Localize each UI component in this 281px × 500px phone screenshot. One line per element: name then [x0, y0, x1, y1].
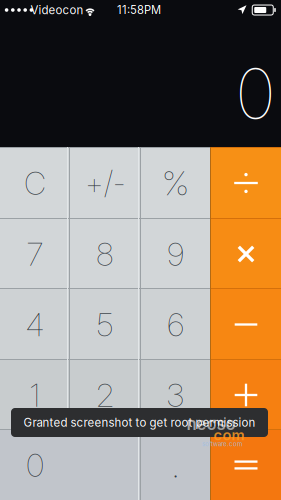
staticText: C: [24, 164, 46, 202]
button[interactable]: Equals: [211, 430, 281, 500]
staticText: 5: [96, 305, 113, 344]
button[interactable]: C: [0, 147, 70, 219]
button[interactable]: 8: [70, 219, 140, 289]
button[interactable]: 9: [140, 219, 211, 289]
button[interactable]: Multiply: [211, 219, 281, 289]
staticText: 4: [25, 305, 44, 344]
button[interactable]: 7: [0, 219, 70, 289]
button[interactable]: Plus: [211, 360, 281, 430]
staticText: Granted screenshot to get root permissio…: [23, 416, 255, 429]
button[interactable]: 1: [0, 360, 70, 430]
button[interactable]: 6: [140, 289, 211, 360]
button[interactable]: 5: [70, 289, 140, 360]
staticText: .: [171, 439, 179, 487]
button[interactable]: 3: [140, 360, 211, 430]
staticText: 8: [96, 235, 114, 273]
button[interactable]: .: [140, 430, 211, 500]
staticText: 2: [96, 376, 114, 414]
button[interactable]: +/-: [70, 147, 140, 219]
staticText: com: [213, 426, 244, 444]
button[interactable]: %: [140, 147, 211, 219]
staticText: +/-: [85, 164, 125, 201]
staticText: Videocon: [30, 3, 83, 17]
staticText: 6: [167, 305, 184, 344]
staticText: %: [162, 163, 189, 203]
button[interactable]: 4: [0, 289, 70, 360]
staticText: 7: [26, 235, 43, 273]
staticText: software.com: [202, 440, 242, 448]
staticText: necso: [186, 414, 235, 434]
staticText: 9: [167, 235, 184, 273]
staticText: 3: [166, 376, 184, 414]
button[interactable]: 0: [0, 430, 140, 500]
staticText: 11:58PM: [117, 3, 161, 17]
staticText: 0: [26, 446, 44, 484]
button[interactable]: 2: [70, 360, 140, 430]
staticText: 0: [235, 52, 276, 135]
button[interactable]: Minus: [211, 289, 281, 360]
button[interactable]: Divide: [211, 147, 281, 219]
staticText: 1: [29, 376, 40, 414]
